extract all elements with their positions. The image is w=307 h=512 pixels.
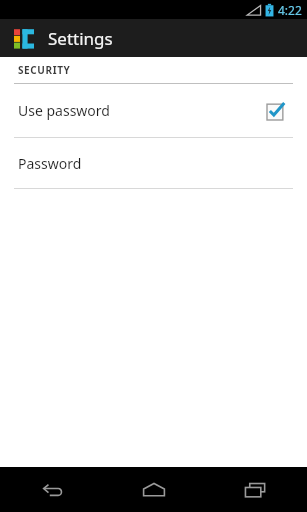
staticText: Use password <box>18 101 267 120</box>
staticText: SECURITY <box>18 63 71 77</box>
button[interactable]: Use password <box>0 84 307 137</box>
button[interactable]: Password <box>0 138 307 188</box>
staticText: Settings <box>48 27 113 50</box>
staticText: 4:22 <box>278 2 302 18</box>
button[interactable]: Recent apps <box>205 467 307 512</box>
button[interactable]: Home <box>103 467 205 512</box>
staticText: Password <box>18 154 82 173</box>
other: Use password checkbox <box>267 102 285 120</box>
button[interactable]: Back <box>0 467 103 512</box>
